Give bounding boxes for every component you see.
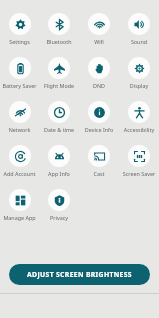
staticText: Bluetooth <box>39 38 79 45</box>
button[interactable]: Manage App <box>0 189 39 221</box>
staticText: App Info <box>39 170 79 177</box>
button[interactable]: Settings <box>0 13 39 45</box>
staticText: Date & time <box>39 126 79 133</box>
staticText: Cast <box>79 170 119 177</box>
button[interactable]: ADJUST SCREEN BRIGHTNESS <box>9 264 150 285</box>
staticText: Sound <box>119 38 159 45</box>
staticText: Privacy <box>39 214 79 221</box>
button[interactable]: Network <box>0 101 39 133</box>
staticText: Wifi <box>79 38 119 45</box>
staticText: Battery Saver <box>0 82 39 89</box>
button[interactable]: Accessibility <box>119 101 159 133</box>
button[interactable]: Privacy <box>39 189 79 221</box>
staticText: ADJUST SCREEN BRIGHTNESS <box>27 270 132 279</box>
button[interactable]: Device Info <box>79 101 119 133</box>
button[interactable]: Cast <box>79 145 119 177</box>
staticText: Add Account <box>0 170 39 177</box>
staticText: Network <box>0 126 39 133</box>
button[interactable]: Add Account <box>0 145 39 177</box>
button[interactable]: Screen Saver <box>119 145 159 177</box>
button[interactable]: Display <box>119 57 159 89</box>
staticText: Device Info <box>79 126 119 133</box>
button[interactable]: DND <box>79 57 119 89</box>
button[interactable]: App Info <box>39 145 79 177</box>
staticText: Flight Mode <box>39 82 79 89</box>
button[interactable]: Sound <box>119 13 159 45</box>
staticText: DND <box>79 82 119 89</box>
staticText: Settings <box>0 38 39 45</box>
button[interactable]: Battery Saver <box>0 57 39 89</box>
button[interactable]: Bluetooth <box>39 13 79 45</box>
staticText: Display <box>119 82 159 89</box>
button[interactable]: Date & time <box>39 101 79 133</box>
button[interactable]: Flight Mode <box>39 57 79 89</box>
staticText: Accessibility <box>119 126 159 133</box>
button[interactable]: Wifi <box>79 13 119 45</box>
staticText: Manage App <box>0 214 39 221</box>
staticText: Screen Saver <box>119 170 159 177</box>
